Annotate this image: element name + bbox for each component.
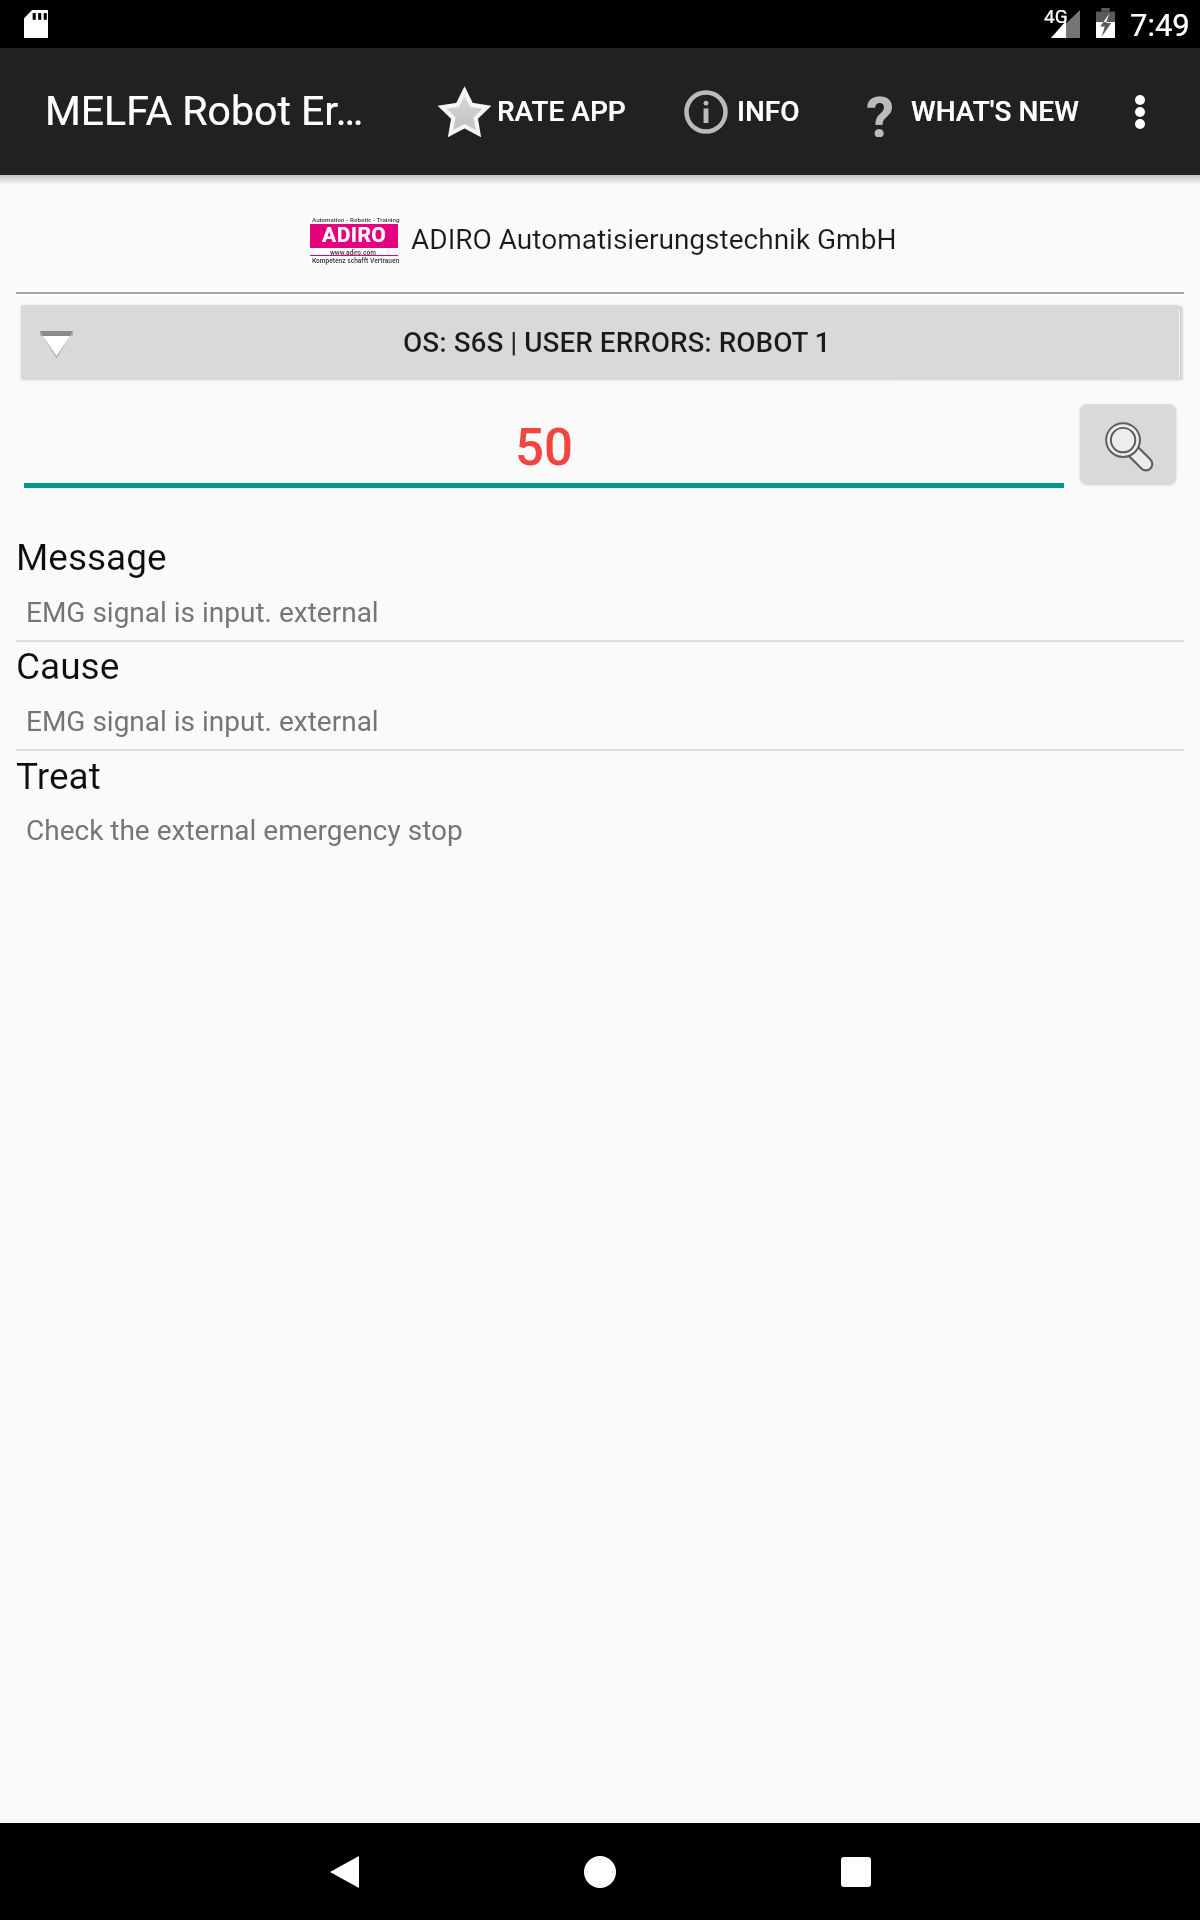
staticText: www.adiro.com (330, 249, 376, 257)
staticText: Message (16, 536, 167, 579)
staticText: Cause (16, 645, 120, 688)
staticText: Kompetenz schafft Vertrauen (312, 257, 400, 265)
staticText: ADIRO (322, 223, 387, 247)
staticText: INFO (737, 95, 800, 128)
staticText: 50 (515, 418, 573, 478)
button[interactable]: RATE APP (439, 48, 626, 175)
button[interactable]: INFO (684, 48, 800, 175)
staticText: EMG signal is input. external (26, 705, 379, 738)
staticText: RATE APP (497, 95, 626, 128)
staticText: OS: S6S | USER ERRORS: ROBOT 1 (403, 326, 831, 359)
staticText: MELFA Robot Er… (45, 87, 364, 135)
staticText: ADIRO Automatisierungstechnik GmbH (411, 223, 897, 256)
staticText: Treat (16, 755, 101, 798)
button[interactable]: Search (1080, 404, 1176, 484)
staticText: Automation - Robotic - Training (312, 216, 400, 223)
button[interactable]: Back (308, 1836, 380, 1908)
button[interactable]: OS: S6S | USER ERRORS: ROBOT 1 (21, 305, 1179, 379)
staticText: 7:49 (1130, 7, 1190, 43)
staticText: EMG signal is input. external (26, 596, 379, 629)
button[interactable]: ? (866, 48, 1079, 175)
staticText: WHAT'S NEW (911, 95, 1079, 128)
staticText: 4G (1044, 5, 1068, 27)
button[interactable]: More options (1100, 48, 1180, 175)
button[interactable]: Recents (820, 1836, 892, 1908)
button[interactable]: Home (564, 1836, 636, 1908)
staticText: ? (866, 85, 893, 137)
staticText: Check the external emergency stop (26, 814, 463, 847)
